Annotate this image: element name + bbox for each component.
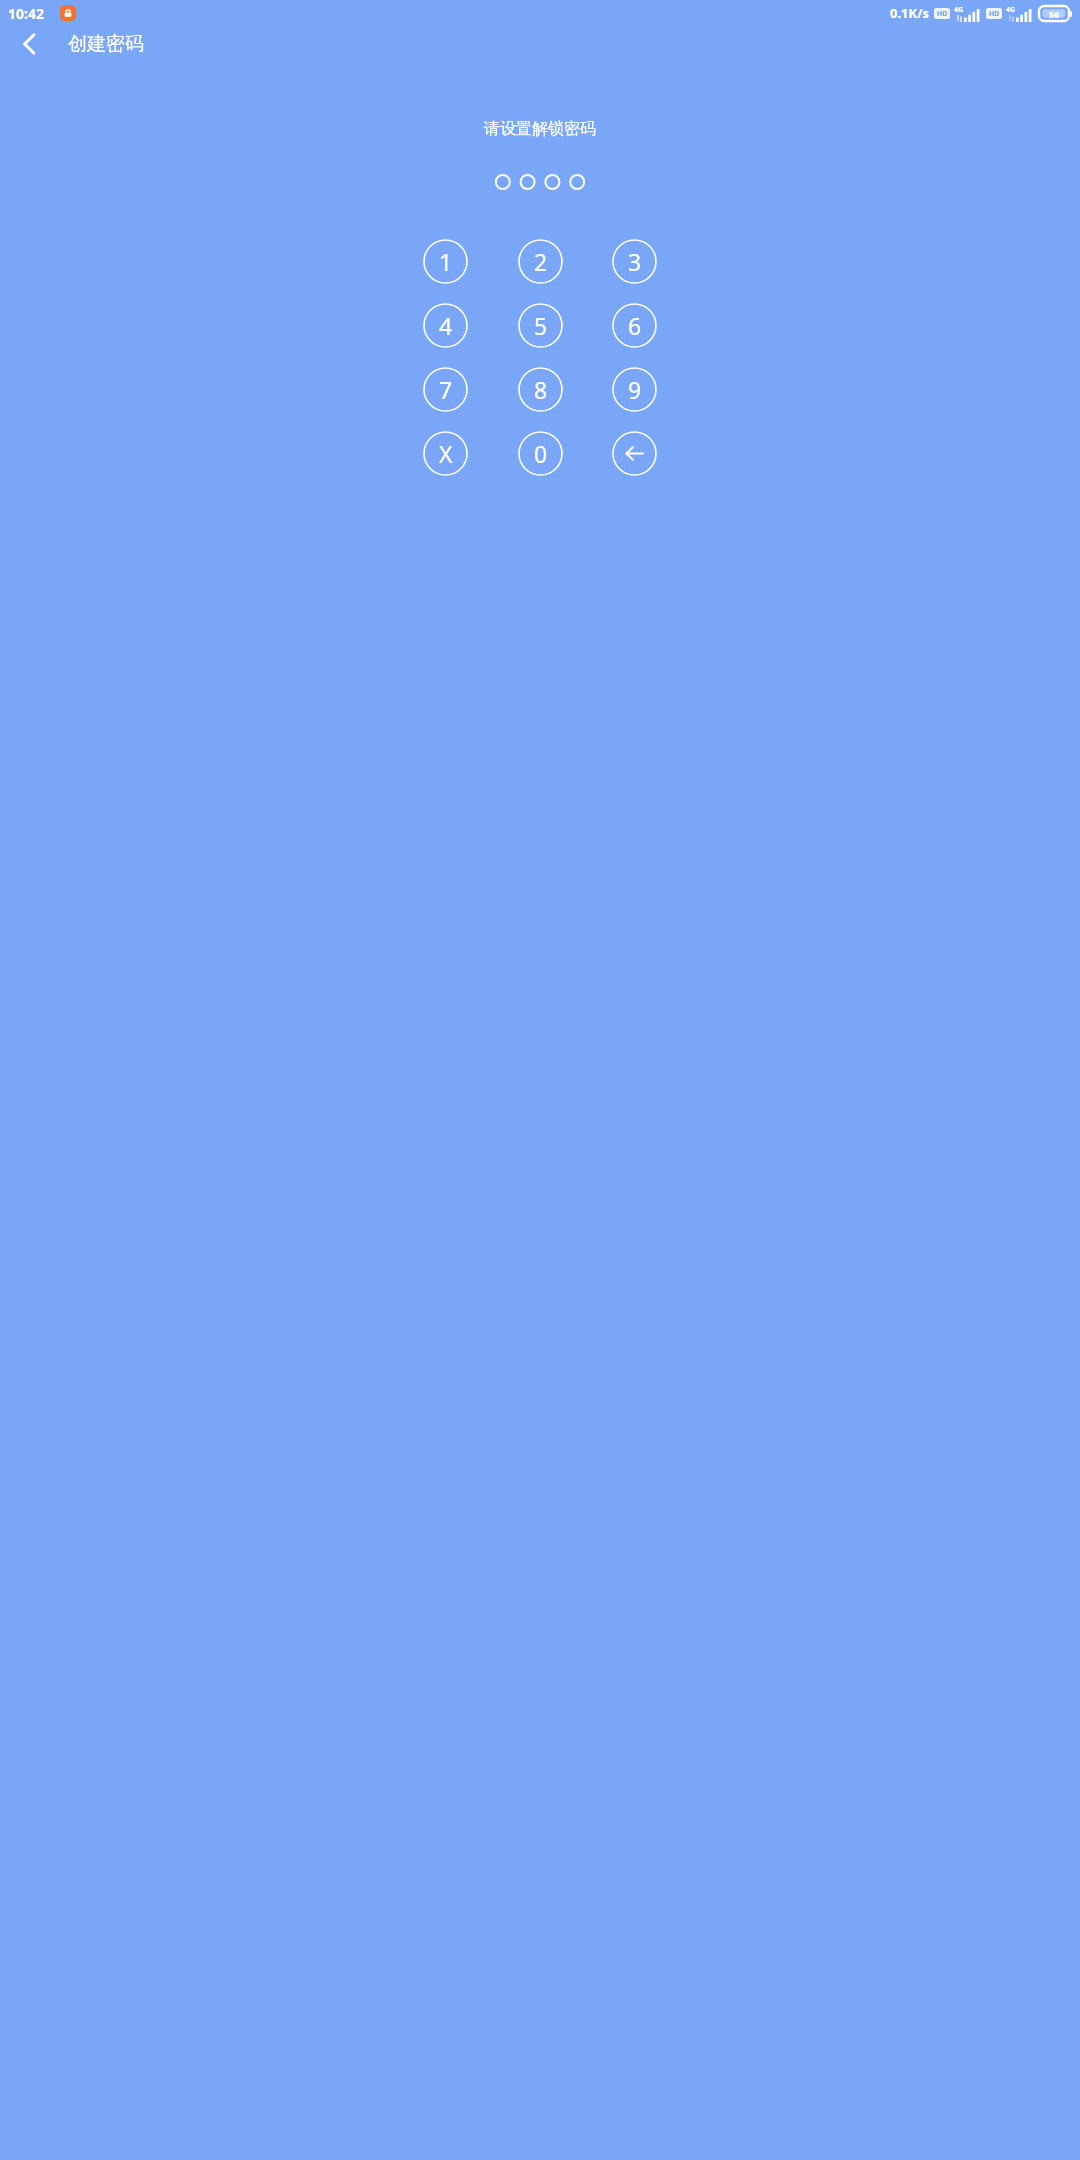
staticText: 5 bbox=[534, 310, 548, 341]
button[interactable]: 6 bbox=[612, 303, 657, 348]
button[interactable]: 3 bbox=[612, 239, 657, 284]
button[interactable]: 7 bbox=[423, 367, 468, 412]
staticText: 4G bbox=[954, 5, 964, 15]
staticText: 56 bbox=[1049, 8, 1060, 20]
button[interactable]: 2 bbox=[518, 239, 563, 284]
staticText: 请设置解锁密码 bbox=[0, 119, 1080, 139]
staticText: 2 bbox=[534, 246, 548, 277]
staticText: 4 bbox=[439, 310, 453, 341]
staticText: X bbox=[439, 438, 453, 469]
button[interactable]: 9 bbox=[612, 367, 657, 412]
staticText: 3 bbox=[628, 246, 642, 277]
staticText: 1 bbox=[439, 246, 453, 277]
staticText: 10:42 bbox=[8, 4, 44, 23]
staticText: 7 bbox=[439, 374, 453, 405]
staticText: HD bbox=[989, 9, 1000, 19]
button[interactable]: Back bbox=[6, 20, 54, 68]
button[interactable]: 0 bbox=[518, 431, 563, 476]
staticText: 9 bbox=[628, 374, 642, 405]
staticText: 4G bbox=[1006, 5, 1016, 15]
staticText: 创建密码 bbox=[68, 32, 144, 56]
staticText: HD bbox=[937, 9, 948, 19]
button[interactable]: 8 bbox=[518, 367, 563, 412]
staticText: 0 bbox=[534, 438, 548, 469]
staticText: 6 bbox=[628, 310, 642, 341]
button[interactable]: 4 bbox=[423, 303, 468, 348]
button[interactable]: Backspace bbox=[612, 431, 657, 476]
button[interactable]: 1 bbox=[423, 239, 468, 284]
staticText: 0.1K/s bbox=[890, 4, 930, 22]
button[interactable]: 5 bbox=[518, 303, 563, 348]
button[interactable]: X bbox=[423, 431, 468, 476]
staticText: 8 bbox=[534, 374, 548, 405]
